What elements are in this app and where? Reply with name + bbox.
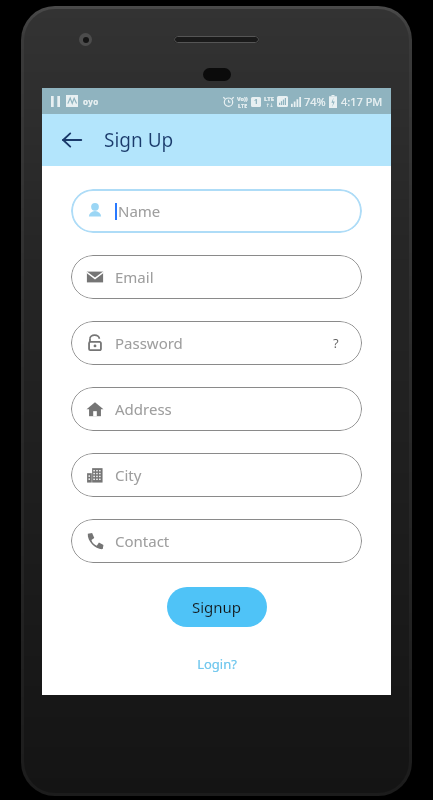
button[interactable]: City (71, 453, 362, 497)
button[interactable]: Email (71, 255, 362, 299)
button[interactable]: Name (71, 189, 362, 233)
staticText: LTE (264, 95, 275, 103)
staticText: Signup (192, 597, 242, 617)
staticText: 74% (304, 94, 326, 109)
staticText: 1 (254, 97, 259, 107)
staticText: Vo)) (237, 95, 248, 102)
button[interactable]: Contact (71, 519, 362, 563)
staticText: Name (118, 201, 161, 221)
staticText: Login? (197, 655, 237, 673)
button[interactable]: Password (71, 321, 362, 365)
staticText: City (115, 465, 142, 485)
staticText: Sign Up (104, 127, 174, 153)
staticText: Password (115, 333, 183, 353)
staticText: 4:17 PM (341, 94, 383, 109)
staticText: Email (115, 267, 154, 287)
staticText: oyo (83, 96, 99, 107)
button[interactable]: Signup (167, 587, 267, 627)
button[interactable]: Login? (189, 653, 245, 675)
staticText: Contact (115, 531, 170, 551)
staticText: LTE (238, 102, 248, 109)
button[interactable]: Address (71, 387, 362, 431)
button[interactable]: Back (52, 120, 92, 160)
staticText: Address (115, 399, 172, 419)
button[interactable]: Password help (326, 333, 346, 353)
staticText: ? (333, 334, 339, 352)
staticText: ↑↓ (266, 103, 274, 108)
